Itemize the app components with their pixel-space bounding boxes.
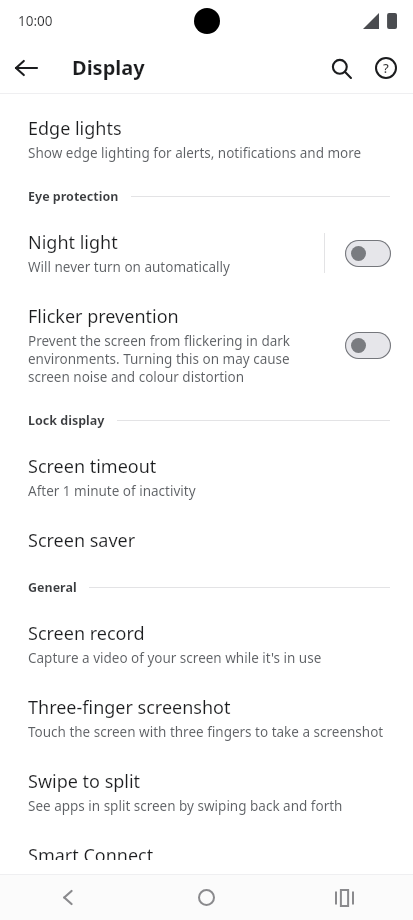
staticText: Smart Connect: [28, 843, 154, 860]
button[interactable]: Three-finger screenshot: [0, 681, 413, 755]
staticText: Swipe to split: [28, 769, 141, 794]
staticText: 10:00: [18, 12, 53, 30]
staticText: Lock display: [28, 412, 105, 429]
staticText: Prevent the screen from flickering in da…: [28, 332, 312, 386]
button[interactable]: Screen record: [0, 607, 413, 681]
staticText: Screen timeout: [28, 454, 157, 479]
button[interactable]: Smart Connect: [0, 829, 413, 874]
staticText: Night light: [28, 230, 118, 255]
staticText: Will never turn on automatically: [28, 258, 230, 276]
staticText: Edge lights: [28, 116, 122, 141]
staticText: Three-finger screenshot: [28, 695, 231, 720]
button[interactable]: Swipe to split: [0, 755, 413, 829]
button[interactable]: Screen timeout: [0, 440, 413, 514]
button[interactable]: Night light: [0, 216, 413, 290]
button[interactable]: Back: [0, 875, 137, 920]
staticText: ?: [383, 59, 389, 77]
staticText: Screen saver: [28, 528, 136, 553]
button[interactable]: Search: [317, 44, 365, 92]
button[interactable]: Help: [365, 44, 407, 92]
staticText: Screen record: [28, 621, 145, 646]
button[interactable]: Back: [0, 42, 52, 93]
staticText: Flicker prevention: [28, 304, 179, 329]
button[interactable]: Flicker prevention: [0, 290, 413, 400]
button[interactable]: Screen saver: [0, 514, 413, 567]
button[interactable]: Recent apps: [275, 875, 413, 920]
staticText: After 1 minute of inactivity: [28, 482, 196, 500]
button[interactable]: Home: [137, 875, 275, 920]
staticText: Show edge lighting for alerts, notificat…: [28, 144, 362, 162]
staticText: Eye protection: [28, 188, 119, 205]
staticText: Display: [72, 54, 317, 81]
button[interactable]: Edge lights: [0, 102, 413, 176]
staticText: General: [28, 579, 77, 596]
staticText: Capture a video of your screen while it'…: [28, 649, 322, 667]
staticText: See apps in split screen by swiping back…: [28, 797, 343, 815]
staticText: Touch the screen with three fingers to t…: [28, 723, 384, 741]
